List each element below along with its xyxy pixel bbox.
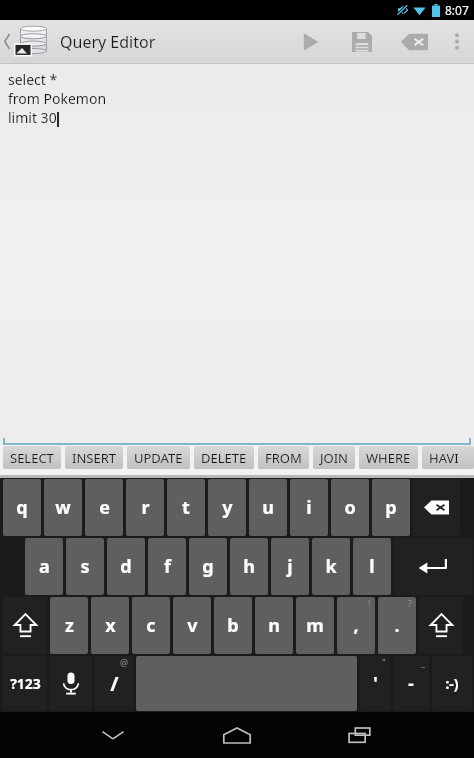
staticText: g bbox=[202, 554, 214, 579]
button[interactable]: z bbox=[50, 597, 88, 654]
button[interactable]: INSERT bbox=[65, 446, 123, 469]
button[interactable]: DELETE bbox=[194, 446, 254, 469]
staticText: s bbox=[80, 554, 90, 579]
button[interactable]: w bbox=[44, 479, 82, 536]
staticText: FROM bbox=[265, 449, 302, 467]
staticText: e bbox=[99, 495, 110, 520]
button[interactable]: g bbox=[189, 538, 227, 595]
staticText: / bbox=[110, 670, 119, 697]
button[interactable]: JOIN bbox=[313, 446, 355, 469]
button[interactable]: u bbox=[249, 479, 287, 536]
button[interactable]: m bbox=[296, 597, 334, 654]
button[interactable]: p bbox=[372, 479, 410, 536]
staticText: k bbox=[325, 554, 337, 579]
button[interactable]: Home bbox=[207, 712, 267, 758]
staticText: d bbox=[120, 554, 132, 579]
button[interactable]: UPDATE bbox=[127, 446, 190, 469]
button[interactable]: s bbox=[66, 538, 104, 595]
staticText: r bbox=[141, 495, 150, 520]
staticText: l bbox=[369, 554, 375, 579]
staticText: from Pokemon bbox=[8, 89, 107, 108]
button[interactable]: o bbox=[331, 479, 369, 536]
staticText: f bbox=[164, 554, 171, 579]
staticText: q bbox=[16, 495, 28, 520]
staticText: INSERT bbox=[72, 449, 116, 467]
button[interactable]: Save bbox=[336, 20, 388, 63]
button[interactable]: Shift bbox=[3, 597, 47, 654]
button[interactable]: WHERE bbox=[359, 446, 418, 469]
staticText: u bbox=[262, 495, 274, 520]
button[interactable]: q bbox=[3, 479, 41, 536]
staticText: a bbox=[39, 554, 50, 579]
button[interactable]: Run query bbox=[284, 20, 336, 63]
staticText: p bbox=[385, 495, 397, 520]
staticText: j bbox=[287, 554, 293, 579]
staticText: " bbox=[382, 656, 386, 668]
button[interactable]: v bbox=[173, 597, 211, 654]
staticText: select * bbox=[8, 70, 58, 89]
button[interactable]: / bbox=[95, 656, 133, 711]
button[interactable]: Voice input bbox=[50, 656, 92, 711]
button[interactable]: r bbox=[126, 479, 164, 536]
button[interactable]: Delete bbox=[413, 479, 460, 536]
button[interactable]: , bbox=[337, 597, 375, 654]
button[interactable]: ?123 bbox=[3, 656, 47, 711]
staticText: w bbox=[55, 495, 71, 520]
button[interactable]: c bbox=[132, 597, 170, 654]
button[interactable]: select * bbox=[0, 64, 474, 435]
staticText: @ bbox=[120, 656, 129, 668]
staticText: t bbox=[182, 495, 190, 520]
button[interactable]: Shift bbox=[419, 597, 463, 654]
button[interactable]: t bbox=[167, 479, 205, 536]
button[interactable]: b bbox=[214, 597, 252, 654]
button[interactable]: y bbox=[208, 479, 246, 536]
button[interactable]: k bbox=[312, 538, 350, 595]
button[interactable]: a bbox=[25, 538, 63, 595]
staticText: y bbox=[222, 495, 233, 520]
staticText: ?123 bbox=[10, 674, 41, 693]
button[interactable]: Enter bbox=[394, 538, 473, 595]
button[interactable]: Navigate up bbox=[0, 20, 53, 63]
staticText: HAVING bbox=[429, 449, 467, 467]
staticText: JOIN bbox=[320, 449, 348, 467]
button[interactable]: h bbox=[230, 538, 268, 595]
button[interactable]: HAVING bbox=[422, 446, 474, 469]
button[interactable]: f bbox=[148, 538, 186, 595]
button[interactable]: FROM bbox=[258, 446, 309, 469]
staticText: c bbox=[146, 613, 156, 638]
staticText: 8:07 bbox=[445, 2, 469, 18]
staticText: DELETE bbox=[201, 449, 247, 467]
staticText: ' bbox=[373, 672, 378, 695]
staticText: , bbox=[353, 613, 359, 638]
button[interactable]: l bbox=[353, 538, 391, 595]
button[interactable]: . bbox=[378, 597, 416, 654]
staticText: limit 30 bbox=[8, 108, 57, 127]
staticText: i bbox=[306, 495, 312, 520]
staticText: Query Editor bbox=[60, 31, 156, 53]
staticText: h bbox=[243, 554, 255, 579]
button[interactable]: Recent apps bbox=[331, 712, 391, 758]
staticText: :-) bbox=[445, 674, 459, 693]
button[interactable]: :-) bbox=[432, 656, 472, 711]
button[interactable]: e bbox=[85, 479, 123, 536]
staticText: - bbox=[408, 672, 414, 695]
button[interactable]: d bbox=[107, 538, 145, 595]
button[interactable]: i bbox=[290, 479, 328, 536]
button[interactable]: x bbox=[91, 597, 129, 654]
button[interactable]: Hide keyboard bbox=[83, 712, 143, 758]
staticText: . bbox=[394, 613, 400, 638]
staticText: WHERE bbox=[366, 449, 411, 467]
button[interactable]: j bbox=[271, 538, 309, 595]
button[interactable]: SELECT bbox=[3, 446, 61, 469]
staticText: m bbox=[306, 613, 324, 638]
staticText: b bbox=[227, 613, 239, 638]
button[interactable]: More options bbox=[440, 20, 474, 63]
staticText: UPDATE bbox=[134, 449, 183, 467]
button[interactable]: Clear text bbox=[388, 20, 440, 63]
button[interactable]: - bbox=[393, 656, 429, 711]
staticText: n bbox=[268, 613, 280, 638]
staticText: SELECT bbox=[10, 449, 54, 467]
button[interactable]: n bbox=[255, 597, 293, 654]
button[interactable]: ' bbox=[360, 656, 390, 711]
